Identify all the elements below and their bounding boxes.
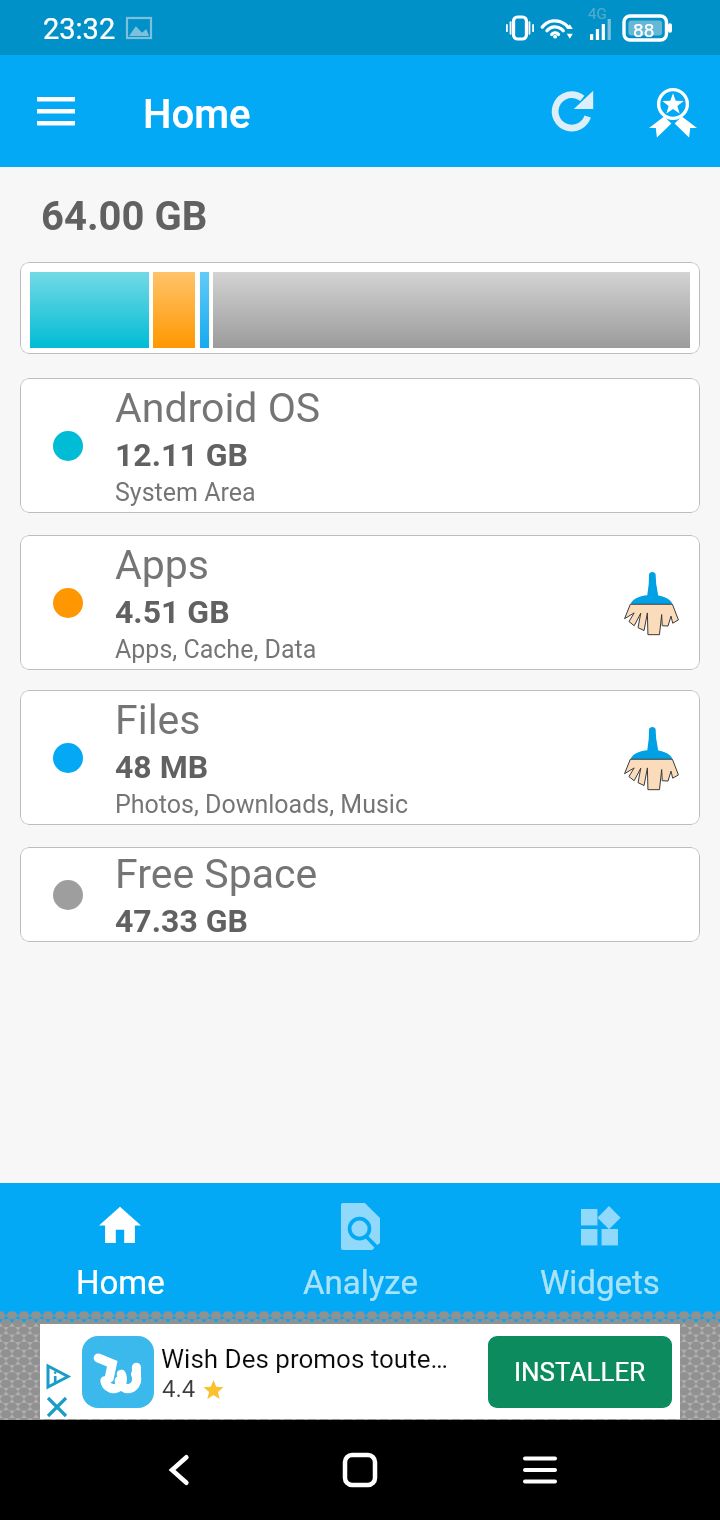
button[interactable]: Recent apps: [510, 1440, 570, 1500]
staticText: Home: [76, 1263, 165, 1302]
staticText: 4.4: [162, 1375, 196, 1403]
button[interactable]: Back: [150, 1440, 210, 1500]
staticText: Home: [143, 91, 251, 138]
staticText: Android OS: [115, 384, 321, 432]
staticText: 23:32: [43, 12, 116, 46]
staticText: Files: [115, 696, 201, 744]
staticText: 48 MB: [115, 748, 209, 786]
staticText: 47.33 GB: [115, 902, 248, 940]
staticText: Wish Des promos toute…: [161, 1344, 448, 1374]
staticText: 4G: [588, 5, 607, 23]
button[interactable]: Home: [330, 1440, 390, 1500]
staticText: Analyze: [303, 1263, 418, 1302]
button[interactable]: Premium: [636, 75, 708, 147]
button[interactable]: Widgets: [480, 1183, 720, 1323]
staticText: Free Space: [115, 850, 318, 898]
button[interactable]: Free Space: [20, 847, 700, 942]
button[interactable]: Android OS: [20, 378, 700, 513]
staticText: Photos, Downloads, Music: [115, 790, 409, 819]
button[interactable]: Menu: [28, 83, 84, 139]
staticText: System Area: [115, 478, 256, 507]
button[interactable]: Files: [20, 690, 700, 825]
staticText: 4.51 GB: [115, 593, 230, 631]
staticText: Widgets: [540, 1263, 660, 1302]
button[interactable]: Refresh: [537, 75, 609, 147]
staticText: Apps: [115, 541, 209, 589]
button[interactable]: Wish Des promos toute…: [40, 1324, 680, 1419]
button[interactable]: Apps: [20, 535, 700, 670]
staticText: 64.00 GB: [41, 193, 208, 240]
button[interactable]: Home: [0, 1183, 240, 1323]
staticText: INSTALLER: [514, 1357, 646, 1387]
staticText: 88: [633, 19, 655, 41]
staticText: 12.11 GB: [115, 436, 248, 474]
staticText: Apps, Cache, Data: [115, 635, 317, 664]
button[interactable]: Analyze: [240, 1183, 480, 1323]
button[interactable]: INSTALLER: [488, 1336, 672, 1408]
button[interactable]: [20, 262, 700, 354]
